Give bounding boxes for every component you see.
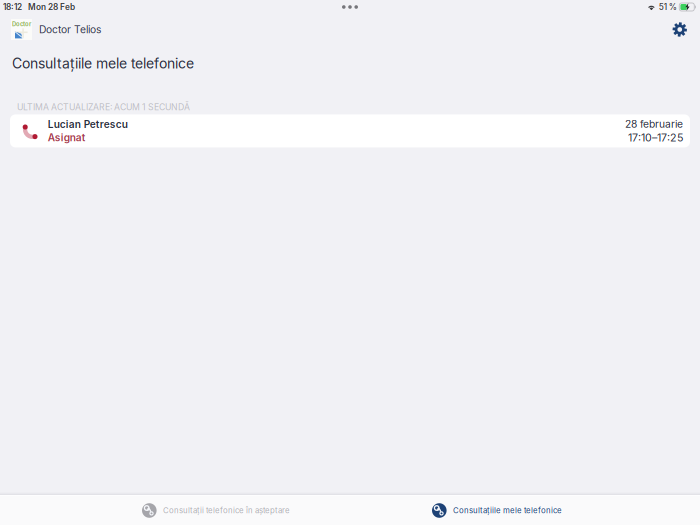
staticText: 28 februarie — [625, 118, 683, 130]
staticText: 18:12 — [3, 2, 22, 12]
button[interactable]: Consultațiile mele telefonice — [432, 496, 612, 525]
staticText: Lucian Petrescu — [48, 118, 128, 130]
staticText: ULTIMA ACTUALIZARE: ACUM 1 SECUNDĂ — [17, 102, 190, 112]
staticText: Consultațiile mele telefonice — [453, 506, 562, 515]
staticText: Mon 28 Feb — [28, 2, 75, 12]
button[interactable]: Consultații telefonice în așteptare — [142, 496, 342, 525]
staticText: Asignat — [48, 131, 86, 144]
staticText: 51 % — [659, 2, 677, 12]
staticText: Consultațiile mele telefonice — [12, 55, 194, 72]
staticText: Doctor Telios — [39, 23, 101, 36]
staticText: Doctor — [12, 21, 31, 28]
staticText: 17:10–17:25 — [628, 131, 683, 144]
button[interactable]: Lucian Petrescu — [10, 114, 690, 147]
staticText: Consultații telefonice în așteptare — [163, 506, 290, 515]
button[interactable]: Settings — [668, 18, 691, 41]
